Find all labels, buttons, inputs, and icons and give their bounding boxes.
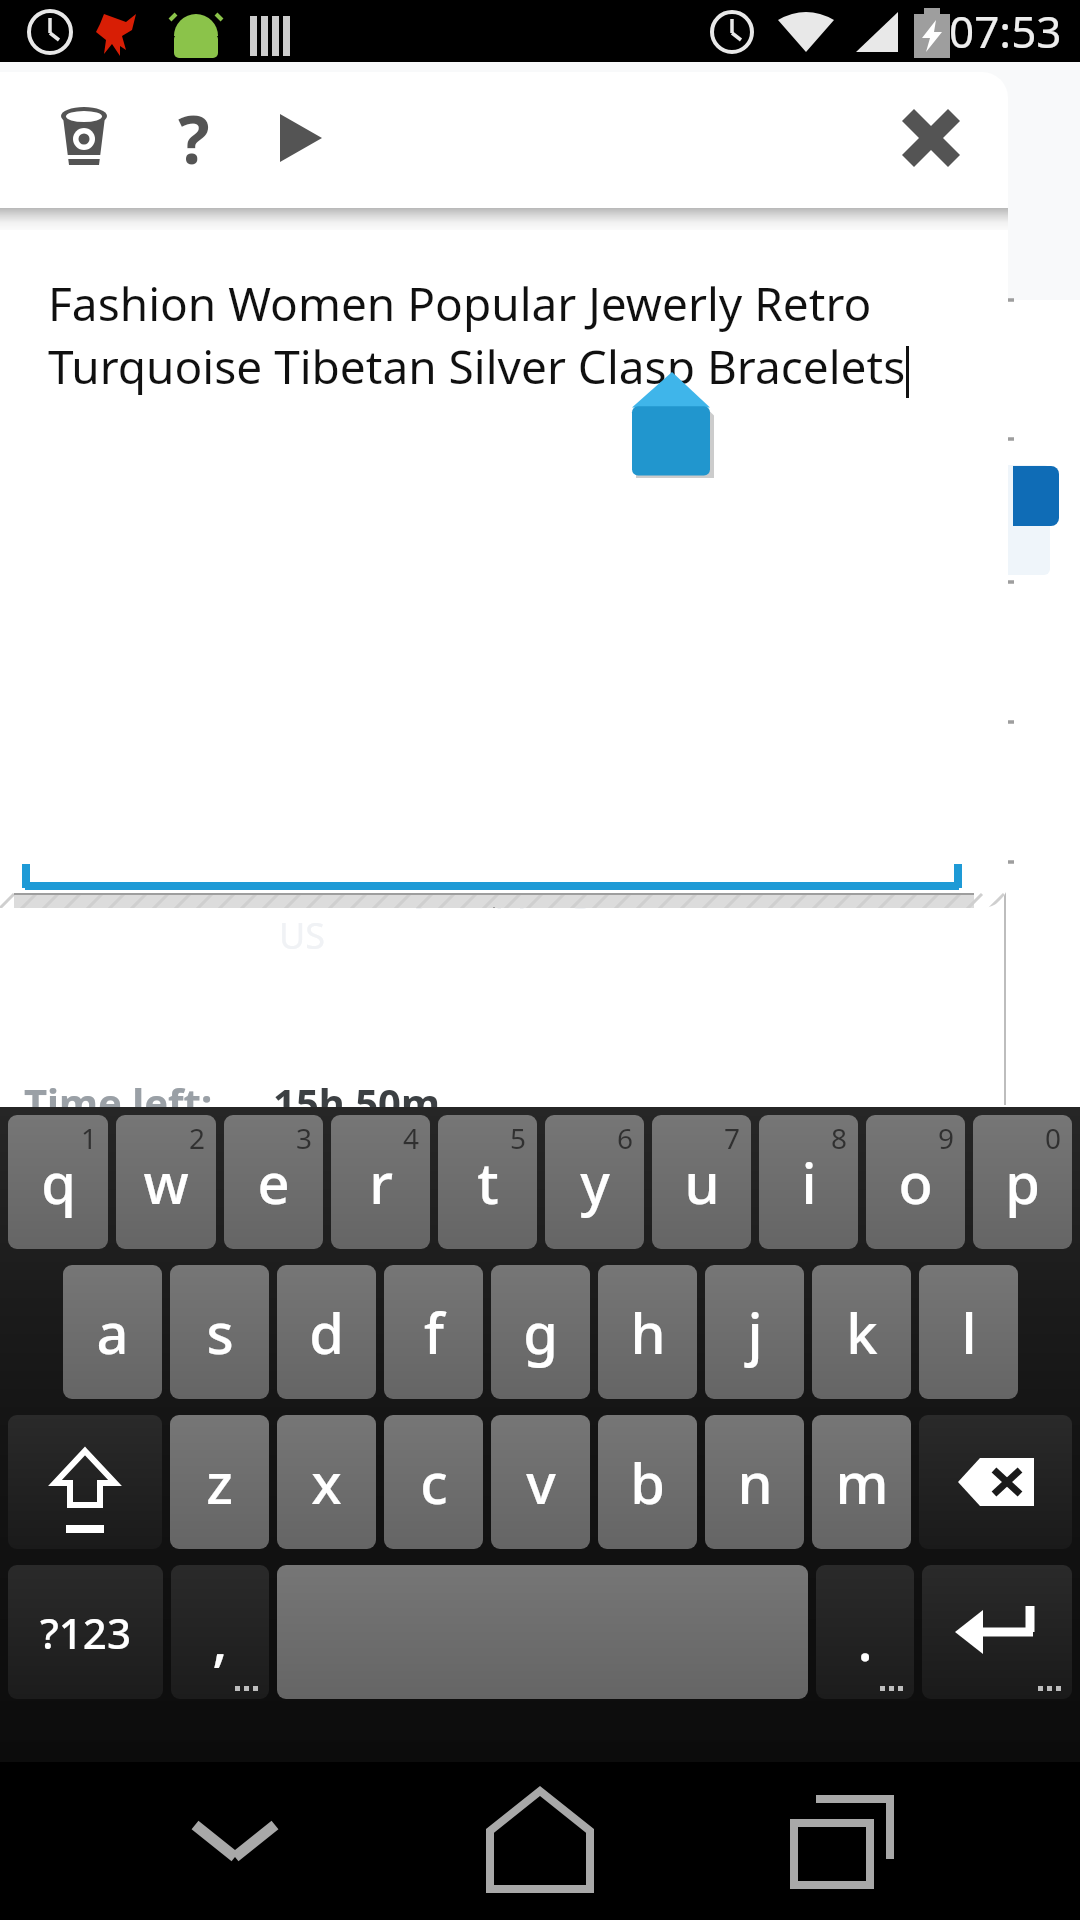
staticText: Time left: xyxy=(24,1075,213,1129)
staticText: n xyxy=(737,1444,773,1520)
staticText: u xyxy=(684,1144,720,1220)
staticText: Turquoise Tibetan Silver Clasp Bracelets xyxy=(48,335,906,398)
button[interactable]: Recent apps xyxy=(775,1771,915,1911)
staticText: g xyxy=(523,1294,558,1370)
button[interactable]: p xyxy=(973,1115,1072,1249)
button[interactable]: o xyxy=(866,1115,965,1249)
button[interactable]: e xyxy=(224,1115,323,1249)
staticText: Starting Bid xyxy=(392,382,591,431)
button[interactable]: j xyxy=(705,1265,804,1399)
staticText: m xyxy=(835,1444,889,1520)
button[interactable]: n xyxy=(705,1415,804,1549)
staticText: 4 xyxy=(403,1119,420,1157)
staticText: 6 xyxy=(617,1119,634,1157)
button[interactable]: i xyxy=(759,1115,858,1249)
staticText: d xyxy=(309,1294,344,1370)
button[interactable]: Close xyxy=(876,83,986,193)
staticText: 2 xyxy=(189,1119,206,1157)
staticText: j xyxy=(747,1294,763,1370)
staticText: US $0.99 (€0.73) xyxy=(24,375,370,438)
staticText: 07:53 xyxy=(949,1,1062,61)
staticText: 5 xyxy=(510,1119,527,1157)
button[interactable]: Help xyxy=(148,92,240,184)
button[interactable]: h xyxy=(598,1265,697,1399)
staticText: ? xyxy=(178,93,210,183)
staticText: Fashion Women Popular Jewerly Retro xyxy=(48,272,872,335)
staticText: 3 xyxy=(296,1119,313,1157)
button[interactable]: t xyxy=(438,1115,537,1249)
staticText: Economy Shipping from outside xyxy=(279,862,820,911)
button[interactable]: z xyxy=(170,1415,269,1549)
button[interactable]: Backspace xyxy=(919,1415,1072,1549)
staticText: t xyxy=(477,1144,499,1220)
button[interactable]: w xyxy=(116,1115,216,1249)
button[interactable]: s xyxy=(170,1265,269,1399)
staticText: 1 xyxy=(81,1119,98,1157)
button[interactable]: d xyxy=(277,1265,376,1399)
button[interactable]: x xyxy=(277,1415,376,1549)
staticText: i xyxy=(801,1144,817,1220)
staticText: o xyxy=(898,1144,933,1220)
staticText: , xyxy=(212,1601,228,1677)
staticText: 9 xyxy=(938,1119,955,1157)
button[interactable]: m xyxy=(812,1415,911,1549)
button[interactable]: g xyxy=(491,1265,590,1399)
button[interactable]: Shift xyxy=(8,1415,162,1549)
button[interactable]: f xyxy=(384,1265,483,1399)
staticText: h xyxy=(630,1294,666,1370)
staticText: 15h 50m xyxy=(273,1075,440,1129)
button[interactable]: Camera xyxy=(38,92,130,184)
staticText: r xyxy=(369,1144,393,1220)
staticText: s xyxy=(206,1294,234,1370)
staticText: y xyxy=(580,1144,610,1220)
staticText: w xyxy=(143,1144,189,1220)
staticText: c xyxy=(420,1444,448,1520)
button[interactable]: b xyxy=(598,1415,697,1549)
staticText: k xyxy=(846,1294,878,1370)
button[interactable]: v xyxy=(491,1415,590,1549)
staticText: a xyxy=(96,1294,129,1370)
button[interactable]: Place Bid xyxy=(30,465,1050,575)
button[interactable]: . xyxy=(816,1565,914,1699)
button[interactable]: ?123 xyxy=(8,1565,163,1699)
staticText: 8 xyxy=(831,1119,848,1157)
button[interactable]: r xyxy=(331,1115,430,1249)
button[interactable]: Home xyxy=(470,1771,610,1911)
staticText: p xyxy=(1005,1144,1040,1220)
staticText: e xyxy=(257,1144,290,1220)
staticText: ?123 xyxy=(40,1604,131,1661)
staticText: . xyxy=(857,1601,873,1677)
button[interactable]: , xyxy=(171,1565,269,1699)
staticText: l xyxy=(961,1294,977,1370)
button[interactable]: a xyxy=(63,1265,162,1399)
staticText: 7 xyxy=(724,1119,741,1157)
button[interactable]: c xyxy=(384,1415,483,1549)
button[interactable]: OK xyxy=(14,894,493,908)
staticText: z xyxy=(206,1444,233,1520)
staticText: 0 xyxy=(1045,1119,1062,1157)
button[interactable]: l xyxy=(919,1265,1018,1399)
button[interactable]: u xyxy=(652,1115,751,1249)
staticText: b xyxy=(630,1444,665,1520)
button[interactable]: Hide keyboard xyxy=(165,1771,305,1911)
button[interactable]: Play xyxy=(254,92,346,184)
staticText: f xyxy=(424,1294,444,1370)
button[interactable]: Enter xyxy=(922,1565,1072,1699)
button[interactable]: Space xyxy=(277,1565,808,1699)
staticText: q xyxy=(41,1144,76,1220)
button[interactable]: Cancel xyxy=(495,894,974,908)
button[interactable]: q xyxy=(8,1115,108,1249)
staticText: v xyxy=(526,1444,556,1520)
staticText: x xyxy=(311,1444,342,1520)
button[interactable]: k xyxy=(812,1265,911,1399)
staticText: US xyxy=(279,911,326,960)
button[interactable]: y xyxy=(545,1115,644,1249)
